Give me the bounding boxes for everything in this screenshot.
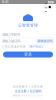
staticText: 9:41 — [2, 0, 8, 4]
staticText: 企业注册 / 忘记密码 — [14, 89, 41, 93]
staticText: ▮▮▮ — [48, 0, 54, 4]
button[interactable]: 企业注册 / 忘记密码 — [14, 89, 41, 93]
staticText: 我已阅读并同意 — [5, 45, 26, 48]
staticText: 客服热线 400-000-0000 — [12, 94, 43, 97]
staticText: 登录 — [24, 52, 32, 57]
button[interactable]: 获取验证码 — [36, 39, 54, 43]
button[interactable]: 登录 — [3, 51, 53, 57]
staticText: 还没有账号？立即注册 — [13, 85, 43, 88]
staticText: 云智慧管理 — [18, 23, 38, 28]
staticText: 获取验证码 — [38, 39, 53, 43]
staticText: 《用户协议》 — [27, 45, 45, 48]
staticText: ••• — [45, 1, 47, 13]
staticText: 请输入手机号 — [2, 32, 20, 37]
button[interactable]: More — [43, 5, 53, 9]
staticText: 请输入验证码 — [2, 39, 20, 43]
button[interactable]: 我已阅读并同意 — [2, 44, 54, 48]
